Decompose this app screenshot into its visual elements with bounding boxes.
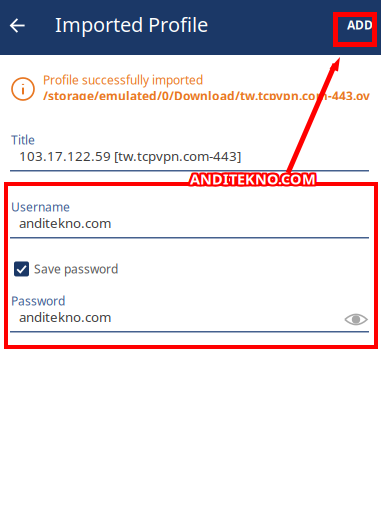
staticText: ANDITEKNO.COM — [189, 169, 315, 188]
staticText: ANDITEKNO.COM — [192, 167, 318, 187]
staticText: ADD — [347, 17, 373, 33]
staticText: Title — [11, 132, 35, 148]
staticText: Profile successfully imported — [43, 72, 203, 88]
staticText: ANDITEKNO.COM — [188, 171, 314, 190]
staticText: ANDITEKNO.COM — [188, 170, 314, 189]
staticText: Username — [11, 199, 70, 215]
staticText: 103.17.122.59 [tw.tcpvpn.com-443] — [19, 147, 241, 165]
staticText: ANDITEKNO.COM — [189, 167, 315, 187]
staticText: ANDITEKNO.COM — [191, 168, 317, 188]
staticText: Password — [11, 293, 65, 309]
button[interactable]: Show password — [338, 307, 374, 332]
button[interactable]: ADD — [336, 7, 381, 43]
staticText: ANDITEKNO.COM — [190, 167, 316, 187]
staticText: ANDITEKNO.COM — [188, 167, 314, 187]
staticText: ANDITEKNO.COM — [190, 170, 316, 189]
staticText: /storage/emulated/0/Download/tw.tcpvpn.c… — [43, 88, 381, 104]
staticText: ANDITEKNO.COM — [189, 171, 315, 190]
staticText: ANDITEKNO.COM — [192, 171, 318, 190]
staticText: ANDITEKNO.COM — [190, 168, 316, 188]
staticText: anditekno.com — [19, 308, 111, 326]
staticText: ANDITEKNO.COM — [192, 170, 318, 189]
staticText: ANDITEKNO.COM — [188, 168, 314, 188]
staticText: ANDITEKNO.COM — [188, 169, 314, 188]
button[interactable]: Save password — [14, 258, 118, 280]
staticText: ANDITEKNO.COM — [191, 171, 317, 190]
staticText: ANDITEKNO.COM — [190, 169, 316, 188]
staticText: ANDITEKNO.COM — [189, 168, 315, 188]
staticText: Save password — [34, 261, 118, 277]
staticText: ANDITEKNO.COM — [192, 169, 318, 188]
staticText: ANDITEKNO.COM — [190, 169, 316, 188]
staticText: ANDITEKNO.COM — [189, 170, 315, 189]
staticText: anditekno.com — [19, 214, 111, 232]
staticText: ANDITEKNO.COM — [192, 168, 318, 188]
staticText: Imported Profile — [55, 11, 208, 38]
staticText: ANDITEKNO.COM — [190, 171, 316, 190]
staticText: ANDITEKNO.COM — [191, 167, 317, 187]
button[interactable]: Back — [0, 6, 39, 45]
staticText: ANDITEKNO.COM — [191, 169, 317, 188]
staticText: ANDITEKNO.COM — [191, 170, 317, 189]
